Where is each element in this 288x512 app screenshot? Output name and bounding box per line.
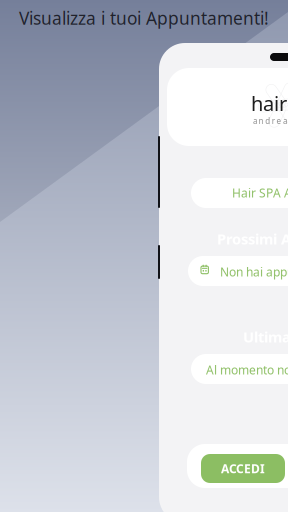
staticText: Non hai appuntamenti: [220, 264, 288, 280]
staticText: Visualizza i tuoi Appuntamenti!: [19, 6, 269, 29]
staticText: Al momento non hai visite: [206, 362, 288, 378]
staticText: d: [265, 116, 270, 126]
staticText: hair: [251, 90, 287, 117]
button[interactable]: Al momento non hai visite: [191, 354, 288, 384]
button[interactable]: Hair SPA Andrea: [191, 178, 288, 208]
staticText: a: [283, 116, 287, 126]
button[interactable]: ACCEDI: [201, 454, 285, 483]
button[interactable]: Non hai appuntamenti: [188, 256, 288, 286]
staticText: Hair SPA Andrea: [232, 185, 288, 201]
staticText: r: [272, 116, 275, 126]
staticText: Prossimi Appuntamenti: [217, 229, 288, 248]
staticText: e: [276, 116, 281, 126]
staticText: Ultima visita: [243, 327, 288, 346]
staticText: n: [259, 116, 264, 126]
staticText: a: [253, 116, 257, 126]
staticText: ACCEDI: [221, 460, 265, 476]
